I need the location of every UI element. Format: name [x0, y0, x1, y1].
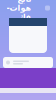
staticText: تابع هواتفك	[6, 0, 31, 22]
